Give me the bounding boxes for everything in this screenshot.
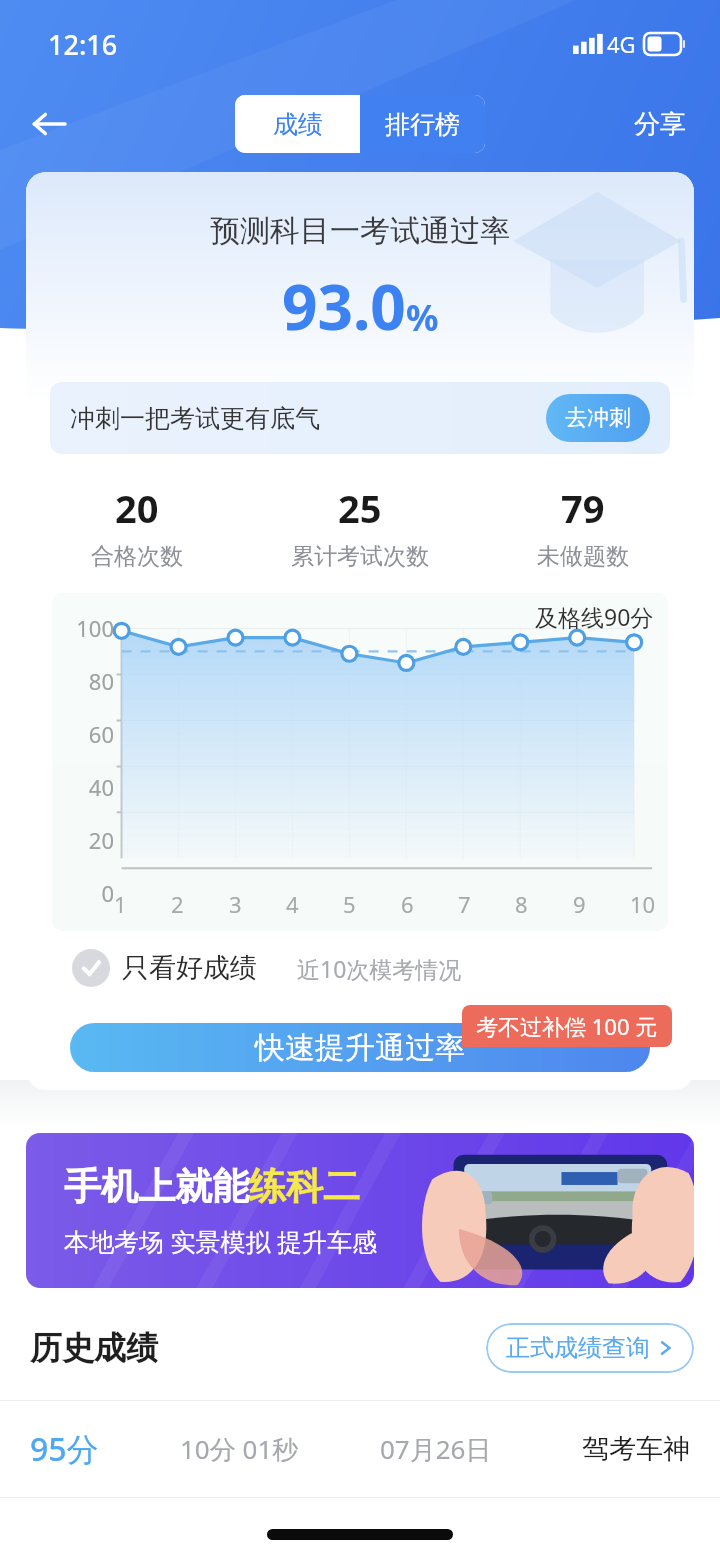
staticText: 07月26日 [380,1431,582,1467]
button[interactable]: 冲刺一把考试更有底气 [50,382,670,454]
staticText: 12:16 [48,26,118,63]
staticText: 10分 01秒 [180,1431,380,1467]
staticText: 累计考试次数 [291,542,429,571]
button[interactable]: 95分 [0,1401,720,1497]
button[interactable]: 排行榜 [360,95,485,153]
staticText: 10 [630,889,656,919]
button[interactable]: 79 [471,482,694,571]
staticText: 成绩 [273,109,323,140]
staticText: 7 [458,889,471,919]
button[interactable]: 25 [248,482,471,571]
button[interactable]: 手机上就能 [26,1133,694,1288]
staticText: 79 [561,482,605,534]
staticText: 100 [58,613,114,643]
staticText: 排行榜 [385,109,460,140]
staticText: 手机上就能 [64,1163,249,1210]
staticText: 未做题数 [537,542,629,571]
staticText: 合格次数 [91,542,183,571]
staticText: 4G [607,29,636,59]
staticText: 快速提升通过率 [255,1029,465,1067]
staticText: 正式成绩查询 [506,1333,650,1363]
staticText: 95分 [30,1427,180,1471]
staticText: 2 [171,889,184,919]
staticText: 40 [58,772,114,802]
staticText: 只看好成绩 [122,951,257,985]
staticText: 5 [343,889,356,919]
staticText: 8 [515,889,528,919]
button[interactable]: 只看好成绩 [70,945,259,991]
staticText: 4 [286,889,299,919]
staticText: 分享 [634,108,686,141]
staticText: 80 [58,666,114,696]
staticText: 考不过补偿 100 元 [476,1011,658,1041]
staticText: 冲刺一把考试更有底气 [70,403,320,434]
staticText: 本地考场 实景模拟 提升车感 [64,1224,378,1258]
staticText: 预测科目一考试通过率 [26,212,694,250]
staticText: 0 [58,878,114,908]
staticText: 及格线90分 [535,601,654,632]
staticText: 练科二 [249,1163,360,1210]
staticText: 3 [229,889,242,919]
staticText: 20 [115,482,159,534]
staticText: 驾考车神 [582,1432,690,1466]
staticText: 历史成绩 [30,1328,158,1368]
staticText: 60 [58,719,114,749]
staticText: % [406,293,439,342]
button[interactable]: 快速提升通过率 [70,1023,650,1072]
staticText: 近10次模考情况 [297,953,462,984]
staticText: 1 [114,889,127,919]
button[interactable]: 正式成绩查询 [486,1323,694,1373]
staticText: 93.0 [282,264,406,348]
staticText: 20 [58,825,114,855]
staticText: 9 [573,889,586,919]
button[interactable]: 成绩 [235,95,360,153]
staticText: 6 [401,889,414,919]
staticText: 25 [338,482,382,534]
staticText: 去冲刺 [565,404,631,432]
button[interactable]: 分享 [624,100,696,149]
button[interactable]: 20 [26,482,248,571]
button[interactable]: 返回 [20,96,76,152]
